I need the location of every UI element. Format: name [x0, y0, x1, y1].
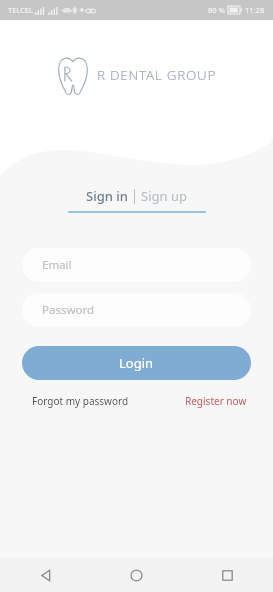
staticText: 80 % — [208, 5, 225, 15]
staticText: Register now — [185, 394, 247, 408]
button[interactable]: Back — [0, 558, 91, 592]
staticText: Sign up — [141, 187, 187, 205]
button[interactable]: Register now — [181, 391, 251, 411]
staticText: Password — [42, 302, 95, 318]
button[interactable]: Home — [91, 558, 182, 592]
button[interactable]: Sign in — [80, 185, 134, 207]
staticText: Sign in — [86, 187, 128, 205]
staticText: TELCEL — [8, 5, 33, 15]
button[interactable]: Email — [22, 248, 251, 282]
staticText: Forgot my password — [32, 394, 129, 408]
staticText: Login — [119, 354, 154, 372]
staticText: R DENTAL GROUP — [97, 66, 217, 84]
button[interactable]: Forgot my password — [22, 391, 139, 411]
button[interactable]: Login — [22, 346, 251, 380]
button[interactable]: Password — [22, 293, 251, 327]
staticText: 11:28 — [245, 5, 265, 15]
button[interactable]: Recent apps — [182, 558, 273, 592]
staticText: Email — [42, 257, 72, 273]
button[interactable]: Sign up — [135, 185, 193, 207]
